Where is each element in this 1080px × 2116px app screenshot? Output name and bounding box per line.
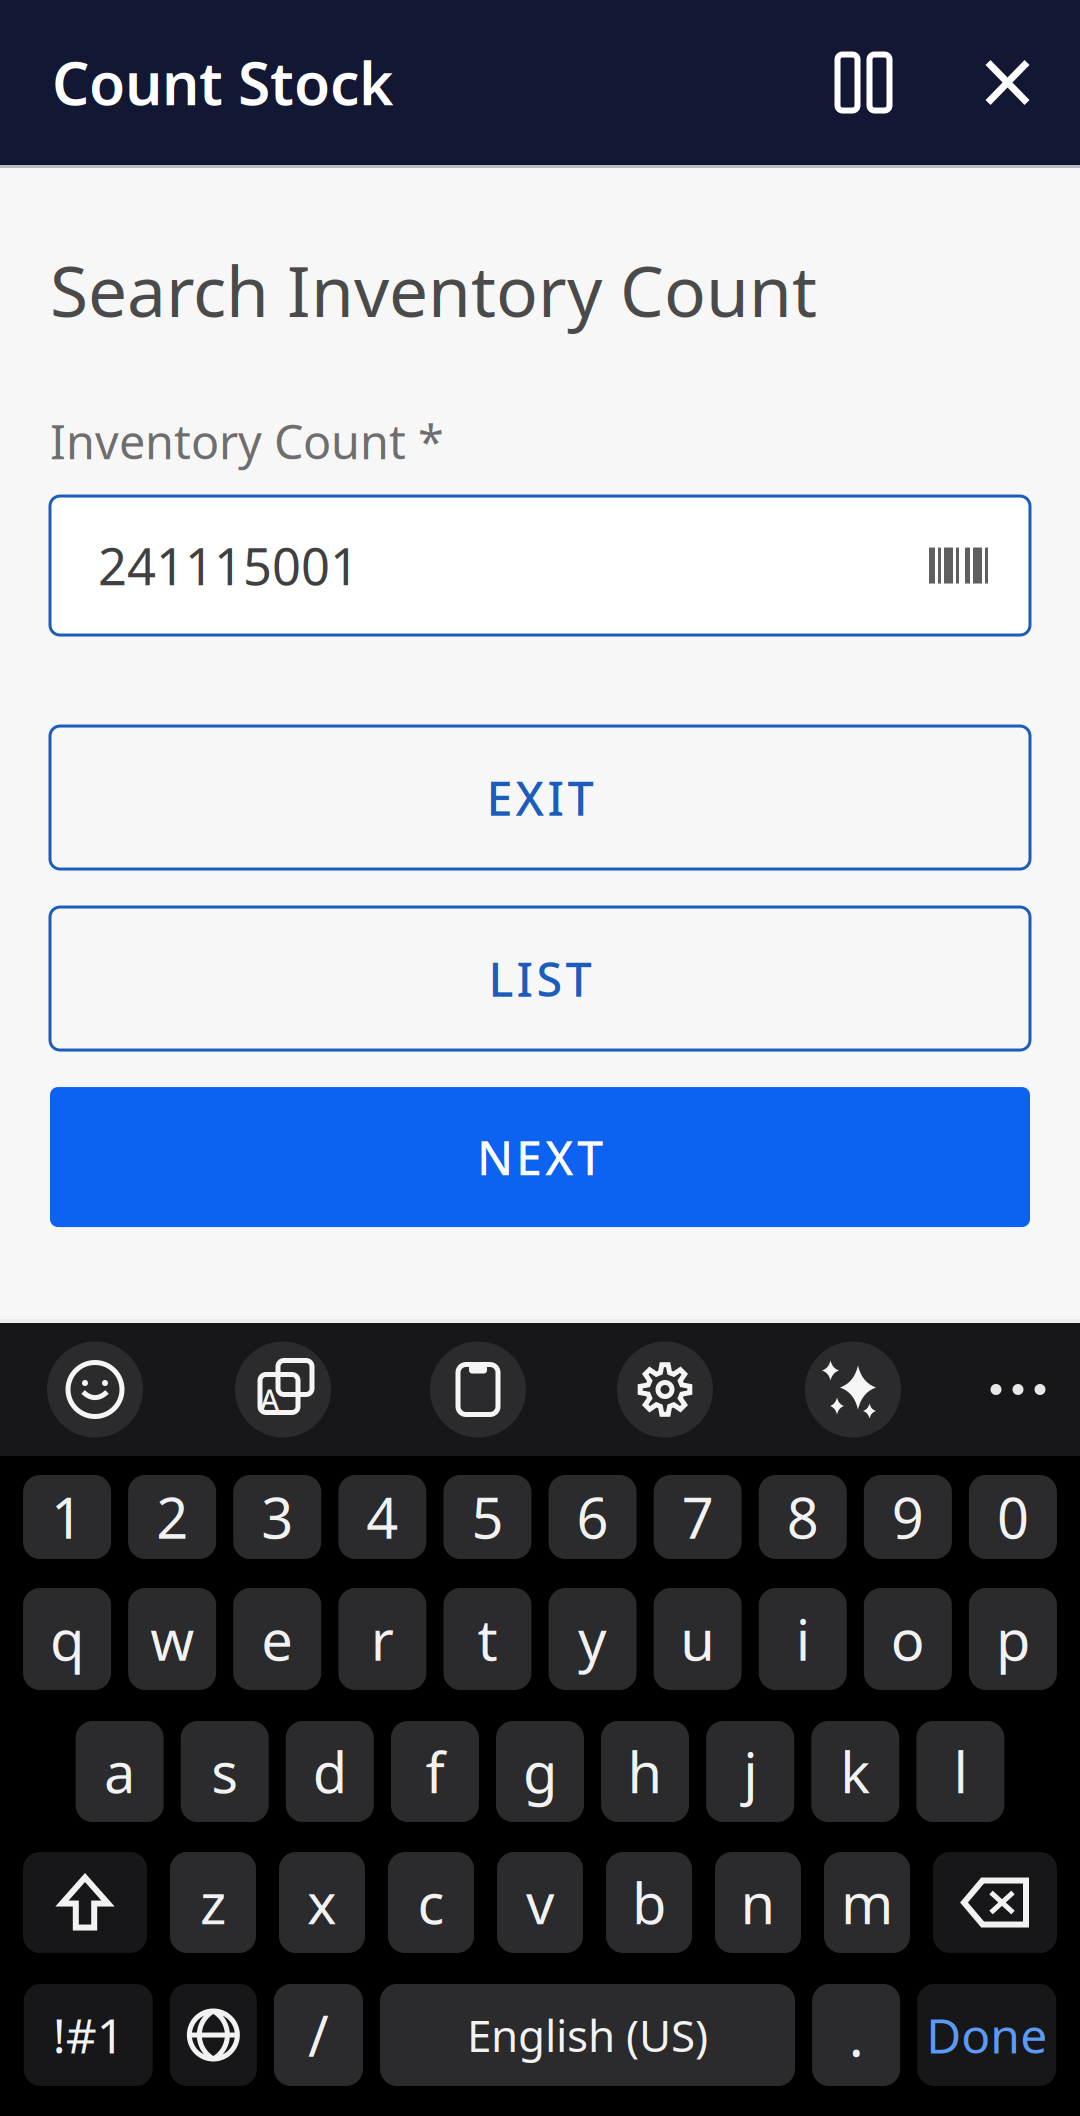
staticText: e xyxy=(261,1602,293,1676)
button[interactable]: s xyxy=(181,1721,269,1822)
staticText: 3 xyxy=(261,1480,293,1554)
button[interactable]: t xyxy=(443,1588,531,1690)
button[interactable]: 9 xyxy=(864,1475,952,1559)
staticText: Inventory Count * xyxy=(50,410,444,472)
button[interactable]: Delete xyxy=(933,1852,1057,1953)
staticText: i xyxy=(796,1602,810,1676)
button[interactable]: j xyxy=(706,1721,794,1822)
staticText: 7 xyxy=(682,1480,714,1554)
staticText: r xyxy=(371,1602,394,1676)
staticText: x xyxy=(307,1865,337,1940)
button[interactable]: 6 xyxy=(548,1475,636,1559)
staticText: . xyxy=(849,1998,864,2072)
button[interactable]: i xyxy=(759,1588,847,1690)
button[interactable]: 8 xyxy=(759,1475,847,1559)
button[interactable]: m xyxy=(824,1852,910,1953)
button[interactable]: z xyxy=(170,1852,256,1953)
button[interactable]: !#1 xyxy=(24,1984,153,2086)
staticText: f xyxy=(425,1734,444,1809)
staticText: 1 xyxy=(51,1480,83,1554)
button[interactable]: / xyxy=(274,1984,363,2086)
staticText: j xyxy=(743,1734,757,1809)
button[interactable]: r xyxy=(338,1588,426,1690)
staticText: b xyxy=(632,1865,666,1940)
button[interactable]: LIST xyxy=(50,907,1030,1050)
button[interactable]: 0 xyxy=(969,1475,1057,1559)
staticText: o xyxy=(891,1602,925,1676)
staticText: 5 xyxy=(471,1480,503,1554)
staticText: g xyxy=(523,1734,557,1809)
button[interactable]: NEXT xyxy=(50,1087,1030,1227)
button[interactable]: n xyxy=(715,1852,801,1953)
button[interactable]: w xyxy=(128,1588,216,1690)
button[interactable]: Translate xyxy=(190,1323,376,1456)
button[interactable]: b xyxy=(606,1852,692,1953)
button[interactable]: o xyxy=(864,1588,952,1690)
button[interactable]: . xyxy=(812,1984,900,2086)
button[interactable]: g xyxy=(496,1721,584,1822)
button[interactable]: Close xyxy=(955,22,1060,142)
staticText: 0 xyxy=(997,1480,1029,1554)
button[interactable]: v xyxy=(497,1852,583,1953)
button[interactable]: 2 xyxy=(128,1475,216,1559)
staticText: Count Stock xyxy=(52,43,393,121)
staticText: n xyxy=(740,1865,775,1940)
staticText: NEXT xyxy=(477,1126,603,1188)
button[interactable]: AI assist xyxy=(750,1323,956,1456)
button[interactable]: h xyxy=(601,1721,689,1822)
staticText: k xyxy=(840,1734,870,1809)
staticText: English (US) xyxy=(467,2006,708,2064)
button[interactable]: Done xyxy=(917,1984,1056,2086)
staticText: / xyxy=(308,1998,329,2072)
staticText: EXIT xyxy=(486,767,593,829)
button[interactable]: k xyxy=(811,1721,899,1822)
button[interactable]: x xyxy=(279,1852,365,1953)
button[interactable]: 7 xyxy=(654,1475,742,1559)
staticText: t xyxy=(477,1602,497,1676)
button[interactable]: y xyxy=(548,1588,636,1690)
button[interactable]: l xyxy=(916,1721,1004,1822)
button[interactable]: Clipboard xyxy=(376,1323,580,1456)
button[interactable]: Switch language xyxy=(170,1984,257,2086)
button[interactable]: EXIT xyxy=(50,726,1030,869)
staticText: q xyxy=(50,1602,84,1676)
button[interactable]: 5 xyxy=(443,1475,531,1559)
staticText: 6 xyxy=(576,1480,608,1554)
staticText: v xyxy=(526,1865,554,1940)
staticText: Search Inventory Count xyxy=(50,244,817,336)
staticText: w xyxy=(150,1602,194,1676)
button[interactable]: Shift xyxy=(23,1852,147,1953)
staticText: LIST xyxy=(488,948,591,1010)
staticText: u xyxy=(680,1602,715,1676)
button[interactable]: a xyxy=(76,1721,164,1822)
button[interactable]: 4 xyxy=(338,1475,426,1559)
button[interactable]: d xyxy=(286,1721,374,1822)
button[interactable]: Pause xyxy=(772,22,955,142)
staticText: A xyxy=(260,1379,279,1418)
button[interactable]: Emoji xyxy=(0,1323,190,1456)
staticText: c xyxy=(417,1865,444,1940)
button[interactable]: English (US) xyxy=(380,1984,795,2086)
button[interactable]: p xyxy=(969,1588,1057,1690)
staticText: 2 xyxy=(156,1480,188,1554)
staticText: 8 xyxy=(787,1480,819,1554)
staticText: s xyxy=(211,1734,238,1809)
staticText: z xyxy=(200,1865,226,1940)
button[interactable]: More options xyxy=(956,1323,1080,1456)
staticText: a xyxy=(104,1734,135,1809)
staticText: 9 xyxy=(892,1480,924,1554)
button[interactable]: 3 xyxy=(233,1475,321,1559)
button[interactable]: q xyxy=(23,1588,111,1690)
button[interactable]: u xyxy=(654,1588,742,1690)
staticText: d xyxy=(313,1734,347,1809)
staticText: 4 xyxy=(366,1480,398,1554)
button[interactable]: Settings xyxy=(580,1323,750,1456)
staticText: p xyxy=(996,1602,1030,1676)
staticText: h xyxy=(628,1734,663,1809)
staticText: y xyxy=(578,1602,607,1676)
button[interactable]: 1 xyxy=(23,1475,111,1559)
button[interactable]: f xyxy=(391,1721,479,1822)
staticText: l xyxy=(953,1734,967,1809)
button[interactable]: e xyxy=(233,1588,321,1690)
button[interactable]: c xyxy=(388,1852,474,1953)
